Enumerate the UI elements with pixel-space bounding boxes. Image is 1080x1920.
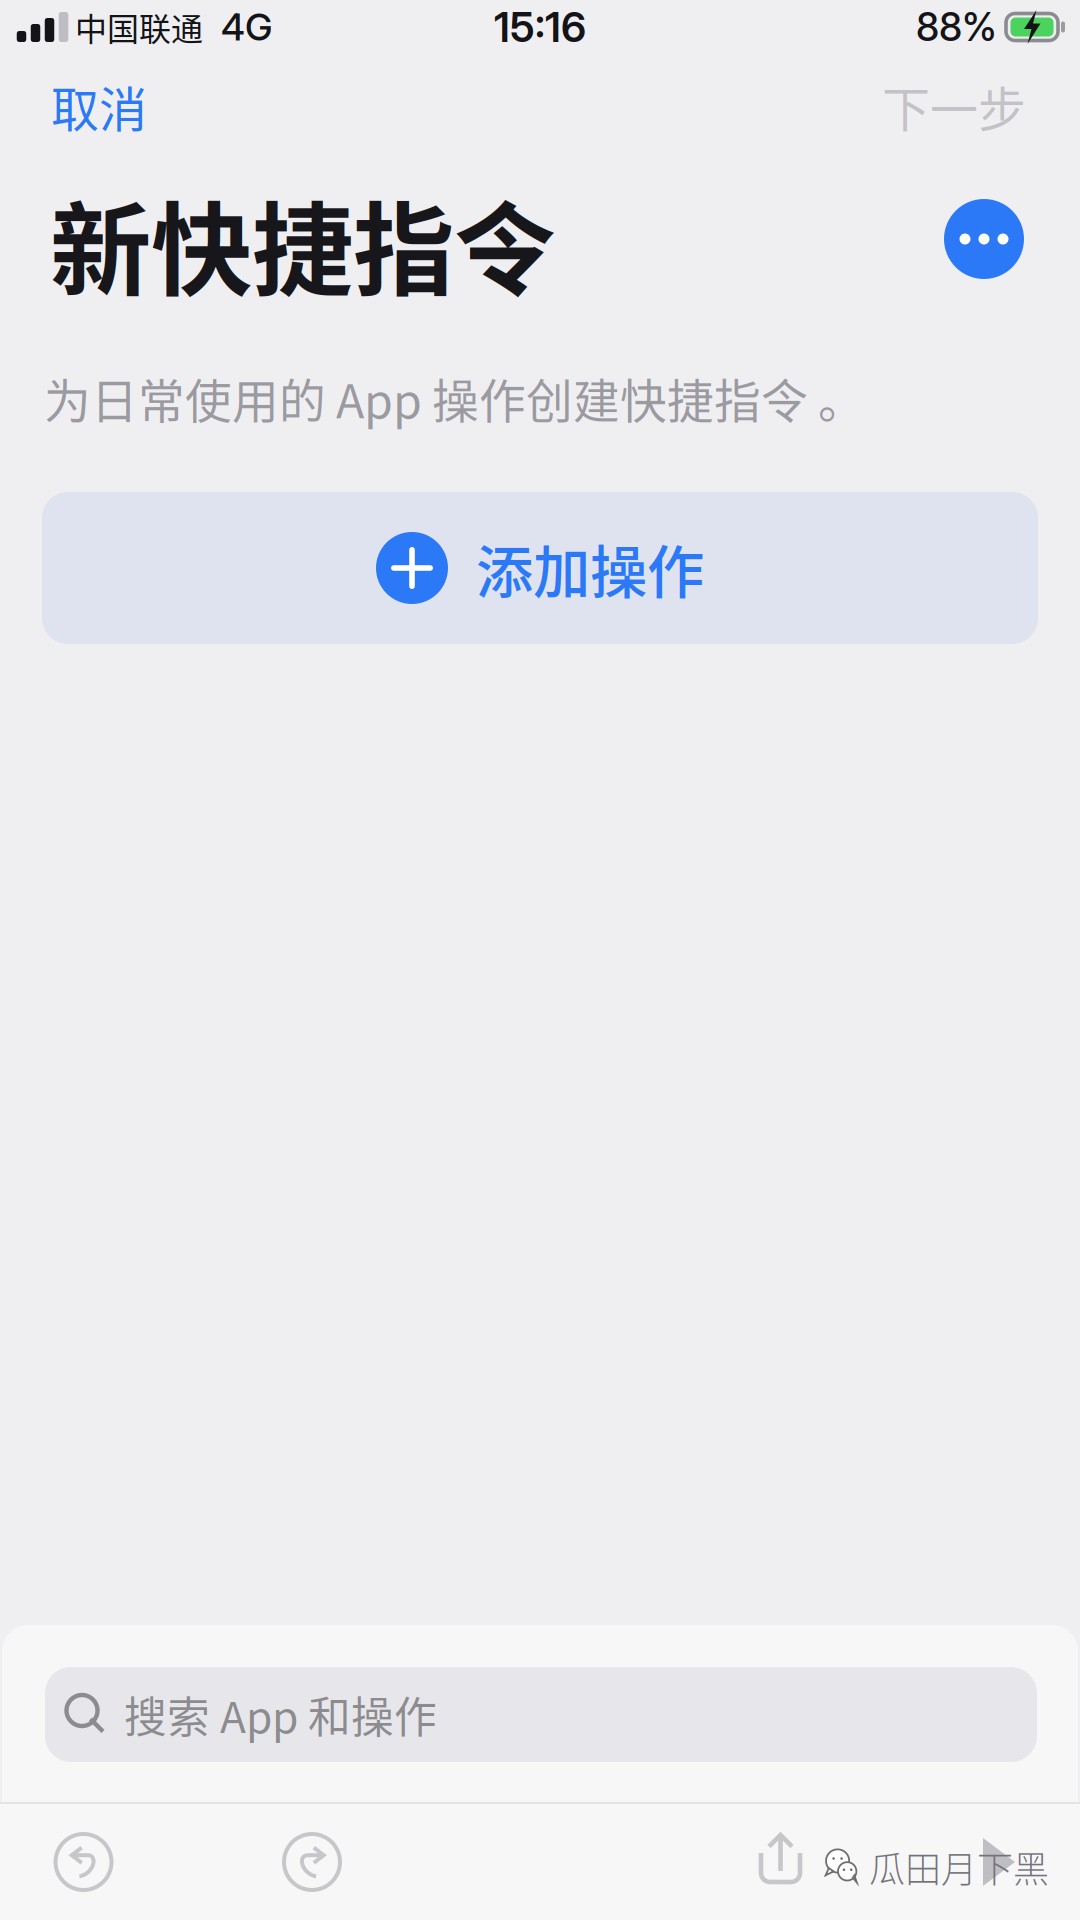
staticText: 搜索 App 和操作	[124, 1684, 437, 1745]
button[interactable]: 更多	[944, 203, 1024, 283]
button[interactable]: 分享	[754, 1829, 808, 1895]
button[interactable]: 撤销	[54, 1833, 112, 1891]
button[interactable]: 搜索 App 和操作	[45, 1667, 1037, 1762]
staticText: 88%	[916, 4, 997, 50]
button[interactable]: 下一步	[882, 61, 1026, 151]
staticText: 15:16	[494, 2, 586, 52]
button[interactable]: 重做	[283, 1833, 341, 1891]
staticText: 4G	[203, 4, 272, 50]
staticText: 添加操作	[476, 526, 704, 609]
staticText: 为日常使用的 App 操作创建快捷指令 。	[44, 364, 865, 432]
button[interactable]: 取消	[51, 61, 147, 151]
button[interactable]: 运行	[982, 1838, 1016, 1886]
staticText: 中国联通	[68, 4, 203, 50]
staticText: 下一步	[882, 71, 1026, 141]
button[interactable]: 添加操作	[42, 492, 1038, 644]
staticText: 取消	[51, 71, 147, 141]
staticText: 新快捷指令	[50, 170, 555, 316]
staticText: 瓜田月下黑	[869, 1841, 1049, 1893]
